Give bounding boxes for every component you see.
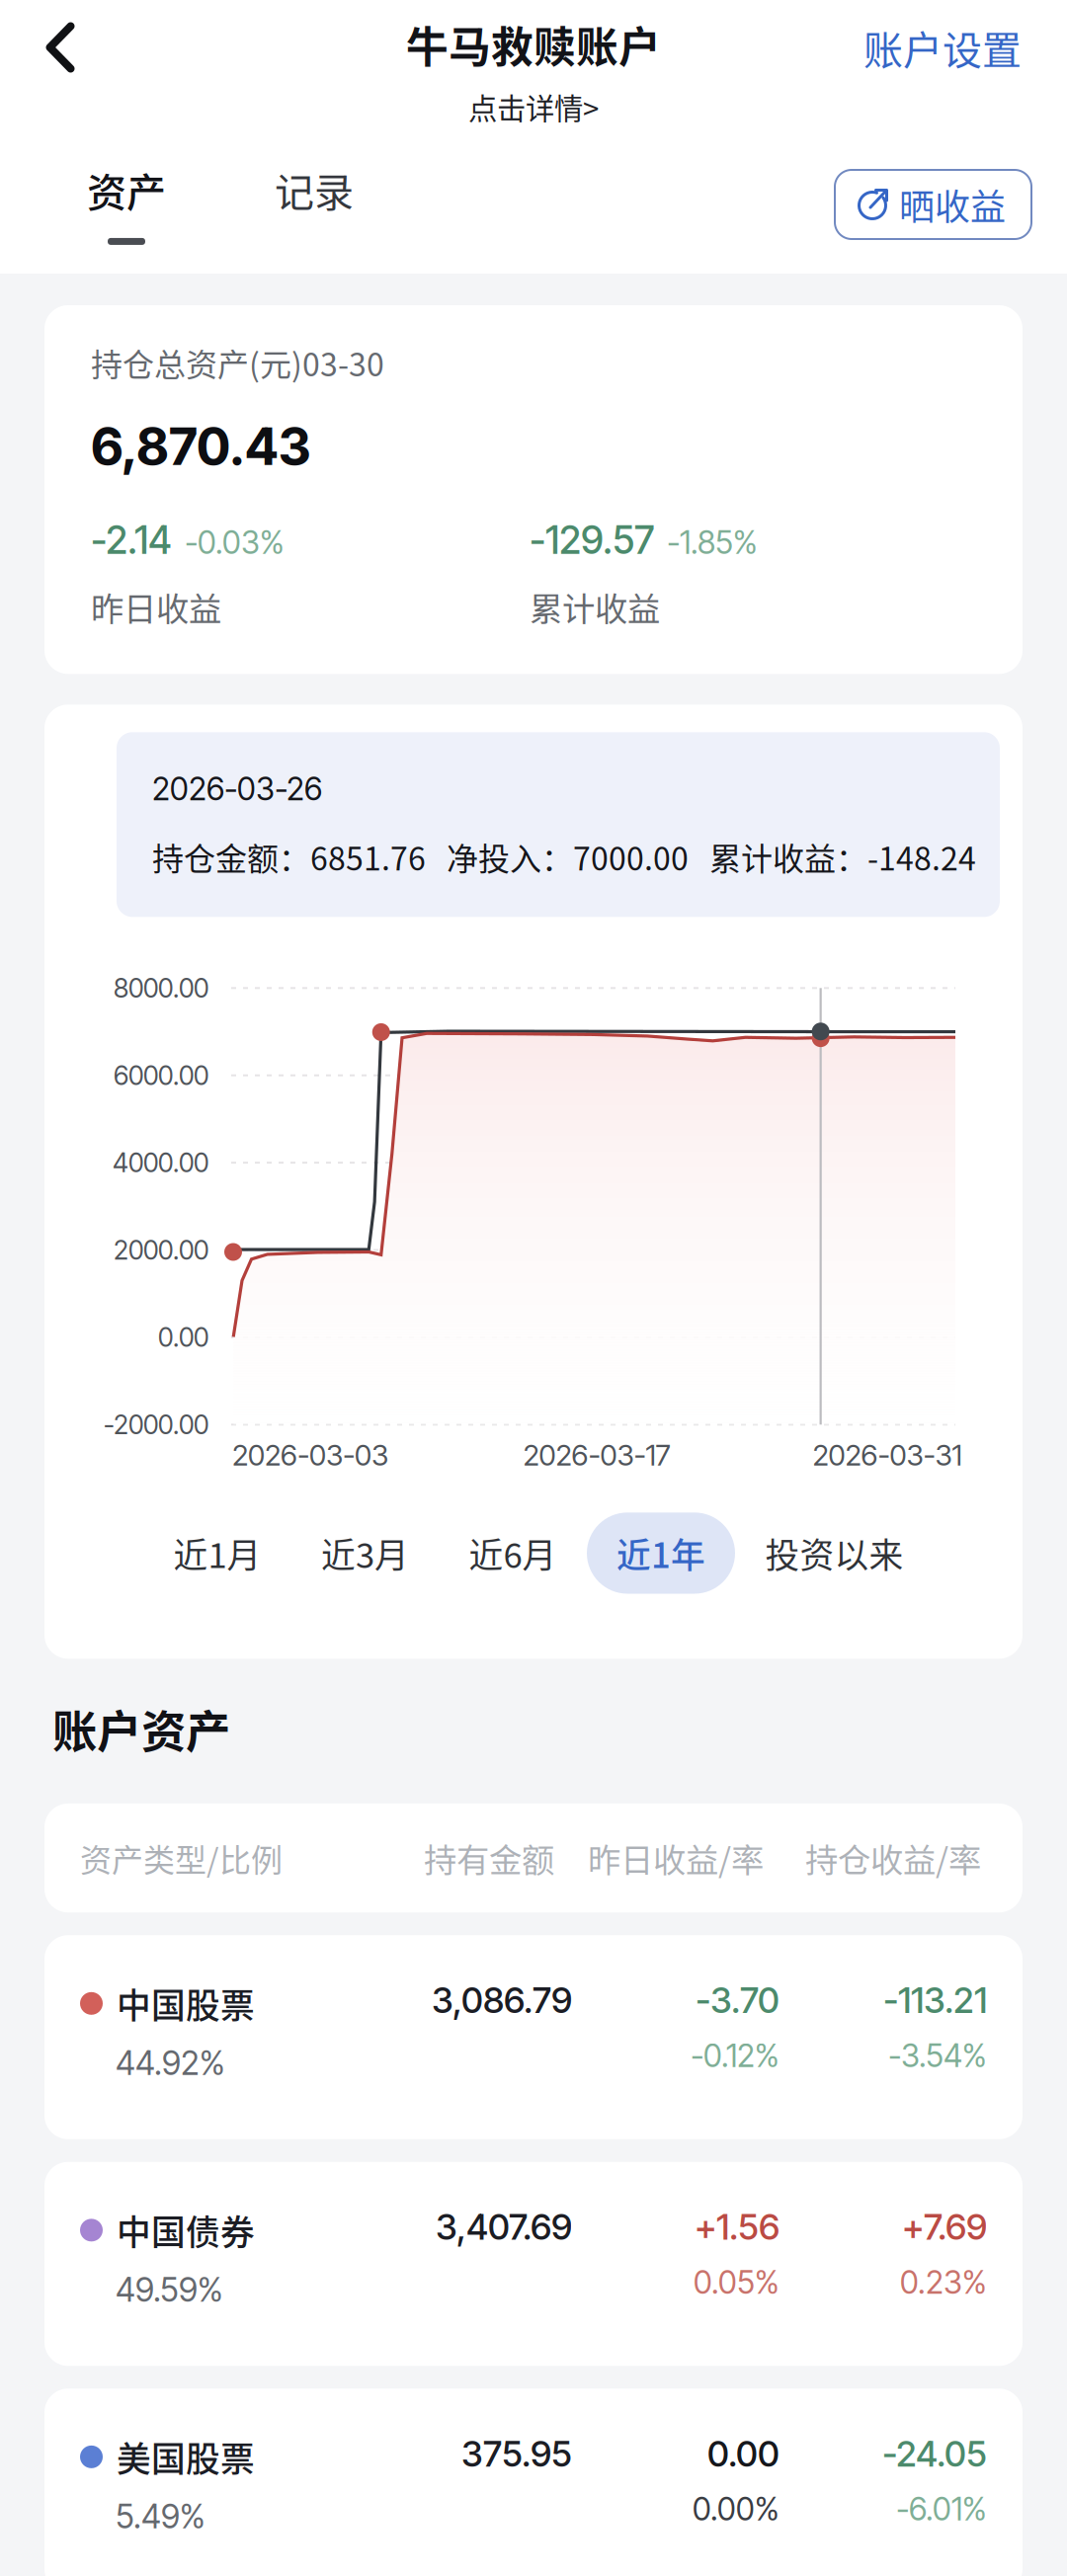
staticText: 3,407.69	[436, 2205, 572, 2248]
button[interactable]: 近6月	[439, 1513, 586, 1594]
staticText: -6.01%	[896, 2490, 987, 2528]
button[interactable]: 资产	[0, 161, 220, 245]
button[interactable]: 记录	[220, 161, 408, 245]
staticText: +7.69	[902, 2205, 987, 2248]
staticText: 2026-03-17	[523, 1437, 670, 1473]
staticText: 2026-03-31	[813, 1437, 962, 1473]
staticText: 美国股票	[117, 2432, 255, 2482]
staticText: 0.00%	[693, 2490, 780, 2528]
staticText: -113.21	[883, 1979, 987, 2022]
staticText: 昨日收益/率	[588, 1834, 764, 1882]
staticText: 近1年	[616, 1528, 705, 1578]
staticText: 账户资产	[52, 1696, 230, 1761]
staticText: 近1月	[173, 1528, 261, 1578]
staticText: 持有金额	[424, 1834, 554, 1882]
staticText: -129.57	[530, 517, 654, 563]
staticText: 资产类型/比例	[80, 1835, 283, 1881]
staticText: 49.59%	[116, 2270, 223, 2310]
staticText: -1.85%	[667, 523, 758, 561]
staticText: 2000.00	[114, 1234, 208, 1266]
staticText: -3.70	[696, 1979, 780, 2022]
staticText: 投资以来	[765, 1528, 903, 1578]
button[interactable]: 近3月	[291, 1513, 439, 1594]
staticText: -24.05	[882, 2432, 987, 2475]
staticText: 2026-03-26	[152, 770, 322, 808]
staticText: 0.00	[158, 1321, 208, 1353]
staticText: 2026-03-03	[232, 1437, 388, 1473]
staticText: 近6月	[469, 1528, 557, 1578]
staticText: 昨日收益	[91, 583, 221, 630]
button[interactable]: 近1月	[144, 1513, 291, 1594]
staticText: 持仓总资产(元)03-30	[91, 340, 384, 386]
button[interactable]: 美国股票	[44, 2389, 1023, 2576]
button[interactable]: 账户设置	[863, 0, 1067, 95]
button[interactable]: 近1年	[587, 1513, 735, 1594]
staticText: 5.49%	[116, 2496, 205, 2536]
staticText: 近3月	[321, 1528, 409, 1578]
staticText: -2000.00	[104, 1409, 208, 1441]
staticText: 点击详情>	[468, 86, 599, 128]
button[interactable]: 投资以来	[736, 1513, 933, 1594]
staticText: 持仓收益/率	[805, 1834, 981, 1882]
staticText: 4000.00	[113, 1147, 208, 1179]
staticText: 0.00	[707, 2432, 780, 2475]
staticText: 中国股票	[117, 1979, 255, 2028]
staticText: 6,870.43	[91, 415, 311, 477]
button[interactable]: 中国股票	[44, 1935, 1023, 2139]
staticText: 0.23%	[900, 2263, 987, 2301]
staticText: 资产	[87, 161, 166, 218]
staticText: 375.95	[461, 2432, 572, 2475]
staticText: 记录	[275, 161, 354, 218]
staticText: -2.14	[91, 517, 172, 563]
staticText: -3.54%	[888, 2037, 987, 2075]
staticText: 持仓金额：6851.76 净投入：7000.00 累计收益：-148.24	[152, 834, 976, 879]
staticText: 中国债券	[117, 2205, 255, 2255]
staticText: 累计收益	[530, 583, 660, 630]
staticText: 晒收益	[899, 179, 1006, 230]
staticText: 牛马救赎账户	[406, 14, 661, 75]
button[interactable]: 晒收益	[835, 170, 1031, 239]
staticText: -0.03%	[185, 523, 285, 561]
staticText: 8000.00	[114, 972, 208, 1004]
staticText: 0.05%	[694, 2263, 780, 2301]
button[interactable]: 中国债券	[44, 2162, 1023, 2366]
staticText: 3,086.79	[432, 1979, 572, 2022]
staticText: -0.12%	[691, 2037, 780, 2075]
staticText: 账户设置	[863, 19, 1022, 76]
staticText: 44.92%	[116, 2043, 225, 2083]
button[interactable]: Back	[0, 0, 121, 95]
staticText: 6000.00	[114, 1059, 208, 1091]
staticText: +1.56	[695, 2205, 780, 2248]
